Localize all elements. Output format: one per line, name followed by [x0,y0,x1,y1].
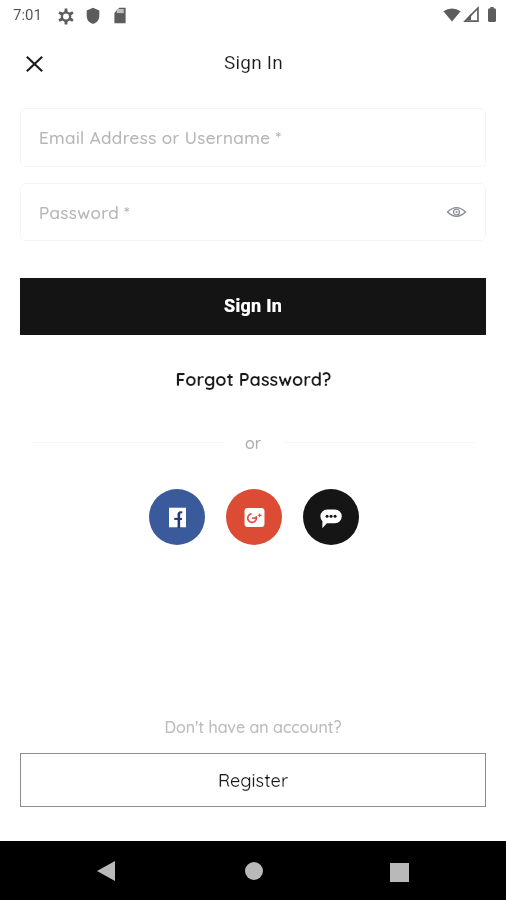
button[interactable]: Home [230,847,278,895]
staticText: Don't have an account? [164,717,342,737]
button[interactable]: Forgot Password? [0,364,506,394]
staticText: Sign In [224,295,283,316]
button[interactable]: Register [20,753,486,807]
staticText: Register [218,769,289,792]
button[interactable]: Recents [375,848,423,896]
button[interactable]: Close [13,43,55,85]
staticText: Forgot Password? [175,368,332,391]
staticText: Email Address or Username * [39,127,282,148]
button[interactable]: Email Address or Username * [20,108,486,167]
button[interactable]: Sign in with Google [226,489,282,545]
button[interactable]: Back [82,847,130,895]
staticText: 7:01 [13,6,42,24]
staticText: Sign In [224,51,283,73]
staticText: or [245,433,262,453]
button[interactable]: Password * [20,183,486,241]
button[interactable]: Sign in with Kakao [303,489,359,545]
button[interactable]: Sign in with Facebook [149,489,205,545]
staticText: Password * [39,202,131,223]
button[interactable]: Sign In [20,278,486,335]
button[interactable]: Show password [440,196,472,228]
